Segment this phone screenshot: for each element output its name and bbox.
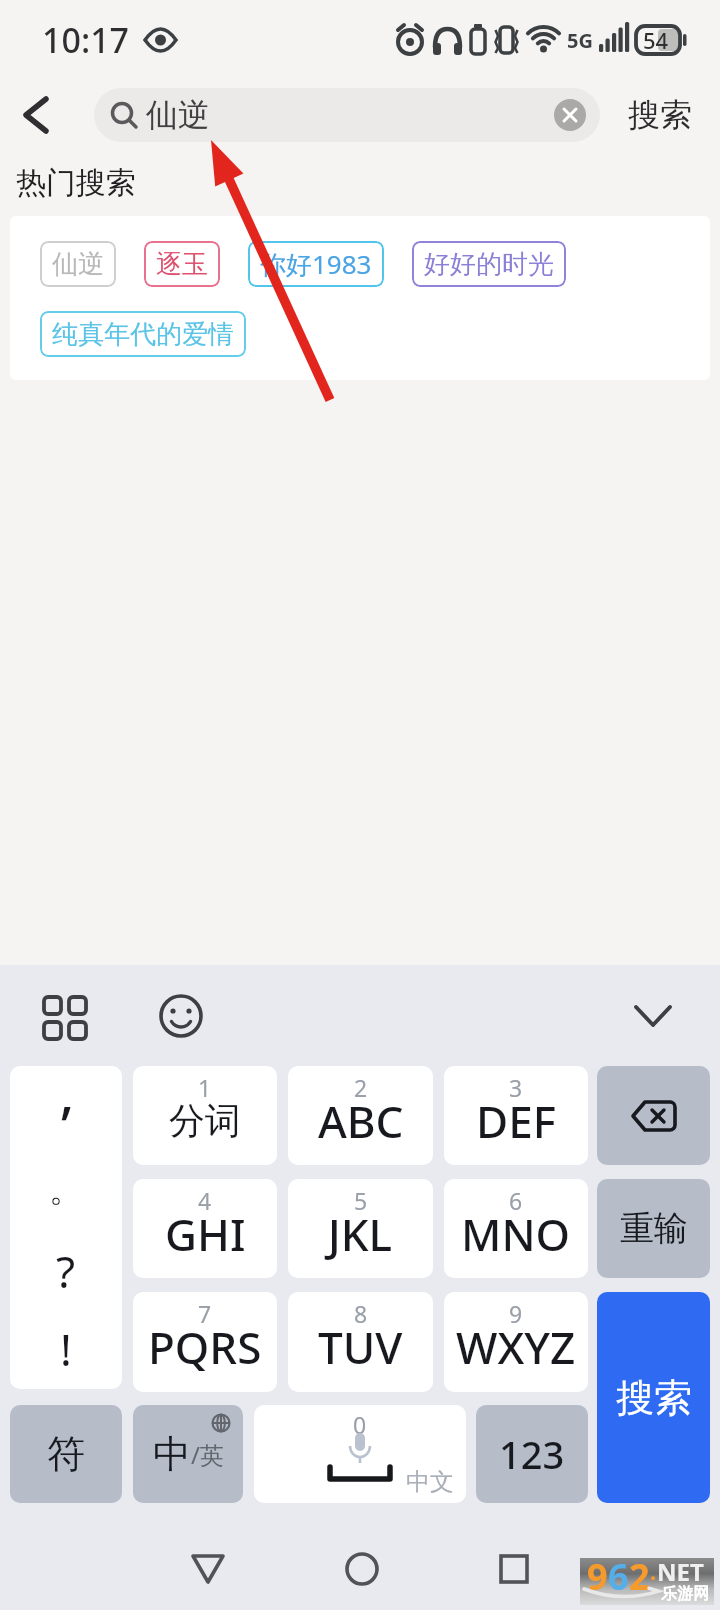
staticText: 热门搜索 xyxy=(16,164,136,202)
staticText: 123 xyxy=(499,1428,565,1480)
staticText: 7 xyxy=(198,1298,212,1329)
staticText: 分词 xyxy=(169,1098,241,1143)
staticText: 54 xyxy=(643,25,669,55)
staticText: GHI xyxy=(165,1204,246,1264)
staticText: 5 xyxy=(354,1185,368,1216)
staticText: 仙逆 xyxy=(52,248,104,281)
staticText: 6 xyxy=(608,1552,629,1599)
button[interactable] xyxy=(494,1549,534,1589)
staticText: 重输 xyxy=(620,1207,688,1250)
staticText: 。 xyxy=(49,1168,83,1211)
button[interactable]: 搜索 xyxy=(600,80,720,150)
staticText: 9 xyxy=(509,1298,523,1329)
staticText: 纯真年代的爱情 xyxy=(52,318,234,351)
staticText: DEF xyxy=(476,1091,556,1151)
button[interactable]: 符 xyxy=(10,1405,122,1503)
staticText: 搜索 xyxy=(616,1374,692,1422)
staticText: ’ xyxy=(61,1088,72,1162)
staticText: . xyxy=(650,1556,657,1586)
button[interactable]: 9 xyxy=(580,1558,714,1605)
button[interactable]: 9 xyxy=(444,1292,588,1392)
button[interactable]: 中 xyxy=(133,1405,243,1503)
button[interactable]: 2 xyxy=(288,1066,433,1165)
staticText: 0 xyxy=(353,1409,367,1440)
staticText: NET xyxy=(657,1555,704,1588)
button[interactable]: 7 xyxy=(133,1292,277,1392)
button[interactable] xyxy=(342,1549,382,1589)
staticText: ! xyxy=(60,1319,72,1379)
button[interactable]: 你好1983 xyxy=(248,241,384,287)
staticText: WXYZ xyxy=(456,1317,576,1377)
staticText: ? xyxy=(56,1241,76,1301)
button[interactable]: 6 xyxy=(444,1179,588,1278)
staticText: 5G xyxy=(567,27,593,54)
button[interactable]: 1 xyxy=(133,1066,277,1165)
button[interactable]: ’ xyxy=(10,1066,122,1389)
button[interactable] xyxy=(188,1549,228,1589)
button[interactable] xyxy=(597,1066,710,1165)
staticText: MNO xyxy=(461,1204,571,1264)
staticText: 好好的时光 xyxy=(424,248,554,281)
button[interactable]: 纯真年代的爱情 xyxy=(40,311,246,357)
staticText: JKL xyxy=(328,1204,393,1264)
button[interactable]: 0 xyxy=(254,1405,466,1503)
button[interactable] xyxy=(630,993,676,1039)
staticText: 搜索 xyxy=(628,95,692,135)
staticText: 中 xyxy=(153,1430,191,1478)
staticText: 1 xyxy=(198,1072,212,1103)
button[interactable] xyxy=(554,99,586,131)
staticText: 中文 xyxy=(406,1467,454,1497)
staticText: 乐游网 xyxy=(661,1584,709,1604)
staticText: 6 xyxy=(509,1185,523,1216)
button[interactable]: 5 xyxy=(288,1179,433,1278)
button[interactable]: 好好的时光 xyxy=(412,241,566,287)
staticText: 3 xyxy=(509,1072,523,1103)
button[interactable] xyxy=(42,995,88,1041)
button[interactable] xyxy=(0,80,70,150)
staticText: 10:17 xyxy=(42,17,130,63)
staticText: 9 xyxy=(587,1552,608,1599)
staticText: 符 xyxy=(47,1430,85,1478)
button[interactable]: 123 xyxy=(476,1405,588,1503)
button[interactable]: 4 xyxy=(133,1179,277,1278)
staticText: PQRS xyxy=(148,1317,262,1377)
button[interactable]: 搜索 xyxy=(597,1292,710,1503)
staticText: TUV xyxy=(318,1317,403,1377)
button[interactable]: 逐玉 xyxy=(144,241,220,287)
staticText: 仙逆 xyxy=(146,95,210,135)
staticText: /英 xyxy=(191,1438,224,1471)
button[interactable]: 3 xyxy=(444,1066,588,1165)
staticText: 4 xyxy=(198,1185,212,1216)
staticText: 逐玉 xyxy=(156,248,208,281)
button[interactable]: 8 xyxy=(288,1292,433,1392)
button[interactable]: 仙逆 xyxy=(40,241,116,287)
staticText: ABC xyxy=(318,1091,404,1151)
staticText: 8 xyxy=(354,1298,368,1329)
staticText: 2 xyxy=(354,1072,368,1103)
button[interactable]: 仙逆 xyxy=(94,88,600,142)
button[interactable]: 重输 xyxy=(597,1179,710,1278)
staticText: 你好1983 xyxy=(260,246,372,282)
staticText: 2 xyxy=(629,1552,650,1599)
button[interactable] xyxy=(158,993,204,1039)
